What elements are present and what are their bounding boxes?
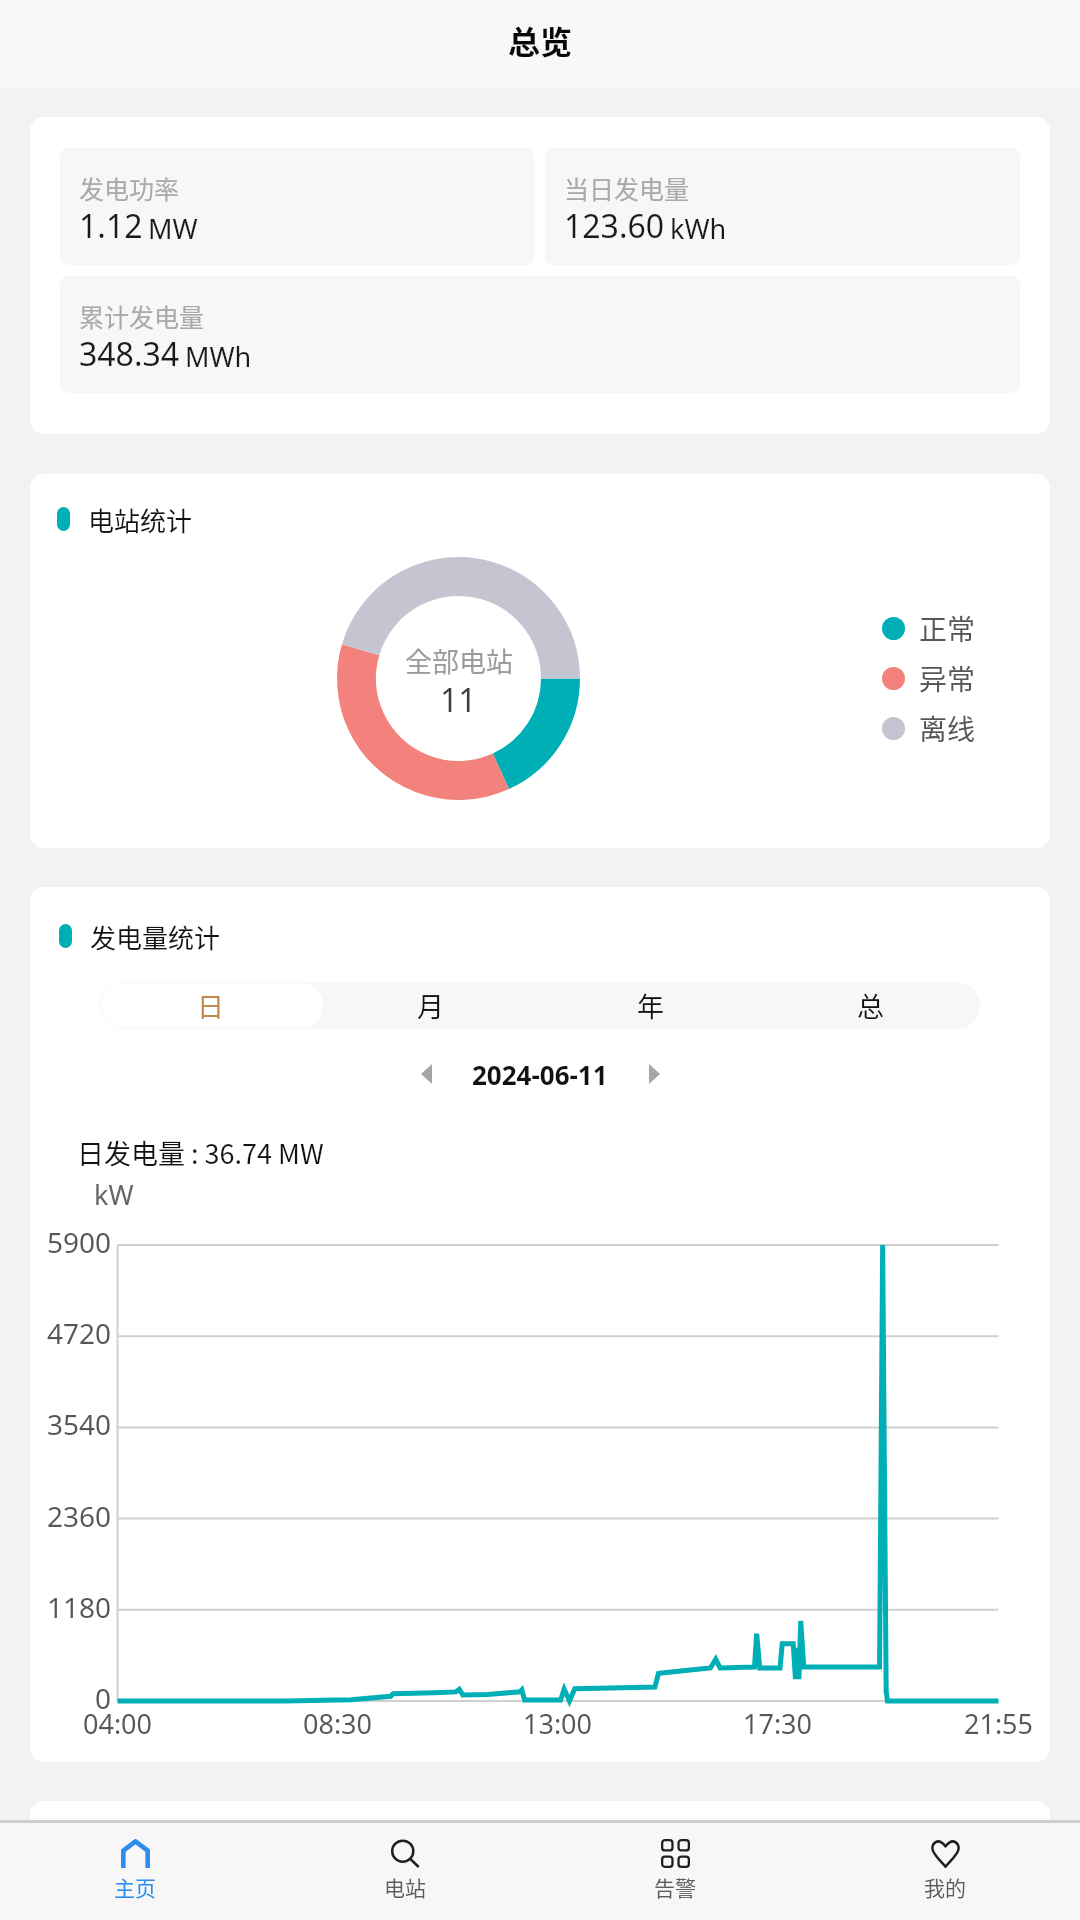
staticText: 发电功率 xyxy=(79,170,180,206)
staticText: 电站统计 xyxy=(88,501,193,539)
staticText: 1180 xyxy=(47,1588,112,1626)
button[interactable]: 发电功率 xyxy=(60,148,534,265)
staticText: 我的 xyxy=(924,1872,966,1902)
staticText: 告警 xyxy=(654,1872,696,1902)
staticText: 348.34 xyxy=(79,332,180,376)
staticText: 异常 xyxy=(919,658,976,699)
staticText: 电站 xyxy=(384,1872,426,1902)
button[interactable]: 告警 xyxy=(540,1823,810,1920)
staticText: 正常 xyxy=(919,608,976,649)
staticText: kWh xyxy=(670,210,727,247)
staticText: kW xyxy=(94,1176,134,1213)
button[interactable]: 累计发电量 xyxy=(60,276,1020,393)
staticText: 2360 xyxy=(47,1497,112,1535)
staticText: 总览 xyxy=(508,17,573,63)
button[interactable]: 离线 xyxy=(882,703,976,753)
staticText: 21:55 xyxy=(964,1705,1034,1742)
button[interactable]: Previous day xyxy=(404,1052,448,1096)
button[interactable]: 日 xyxy=(100,982,320,1029)
staticText: 发电量统计 xyxy=(90,918,221,956)
button[interactable]: Next day xyxy=(632,1052,676,1096)
staticText: 离线 xyxy=(919,708,976,749)
button[interactable]: 总 xyxy=(760,982,980,1029)
staticText: 总 xyxy=(857,986,884,1025)
button[interactable]: 正常 xyxy=(882,603,976,653)
staticText: 5900 xyxy=(47,1223,112,1261)
staticText: 月 xyxy=(417,986,444,1025)
staticText: 全部电站 xyxy=(405,641,513,680)
staticText: 4720 xyxy=(47,1314,112,1352)
staticText: 0 xyxy=(95,1679,112,1717)
button[interactable]: 我的 xyxy=(810,1823,1080,1920)
button[interactable]: 当日发电量 xyxy=(545,148,1020,265)
staticText: 累计发电量 xyxy=(79,298,205,334)
staticText: 04:00 xyxy=(83,1705,153,1742)
staticText: 主页 xyxy=(114,1872,156,1902)
staticText: 123.60 xyxy=(564,204,665,248)
button[interactable]: 异常 xyxy=(882,653,976,703)
button[interactable]: 月 xyxy=(320,982,540,1029)
staticText: 日发电量 : 36.74 MW xyxy=(77,1133,324,1172)
staticText: MW xyxy=(148,210,198,247)
staticText: 3540 xyxy=(47,1405,112,1443)
button[interactable]: 主页 xyxy=(0,1823,270,1920)
staticText: 08:30 xyxy=(303,1705,373,1742)
staticText: 2024-06-11 xyxy=(472,1057,608,1092)
staticText: 17:30 xyxy=(743,1705,813,1742)
staticText: 年 xyxy=(637,986,664,1025)
staticText: 13:00 xyxy=(523,1705,593,1742)
staticText: 11 xyxy=(440,678,477,722)
staticText: 1.12 xyxy=(79,204,143,248)
button[interactable]: 电站 xyxy=(270,1823,540,1920)
staticText: 日 xyxy=(197,986,224,1025)
staticText: MWh xyxy=(185,338,252,375)
button[interactable]: 年 xyxy=(540,982,760,1029)
staticText: 当日发电量 xyxy=(564,170,690,206)
